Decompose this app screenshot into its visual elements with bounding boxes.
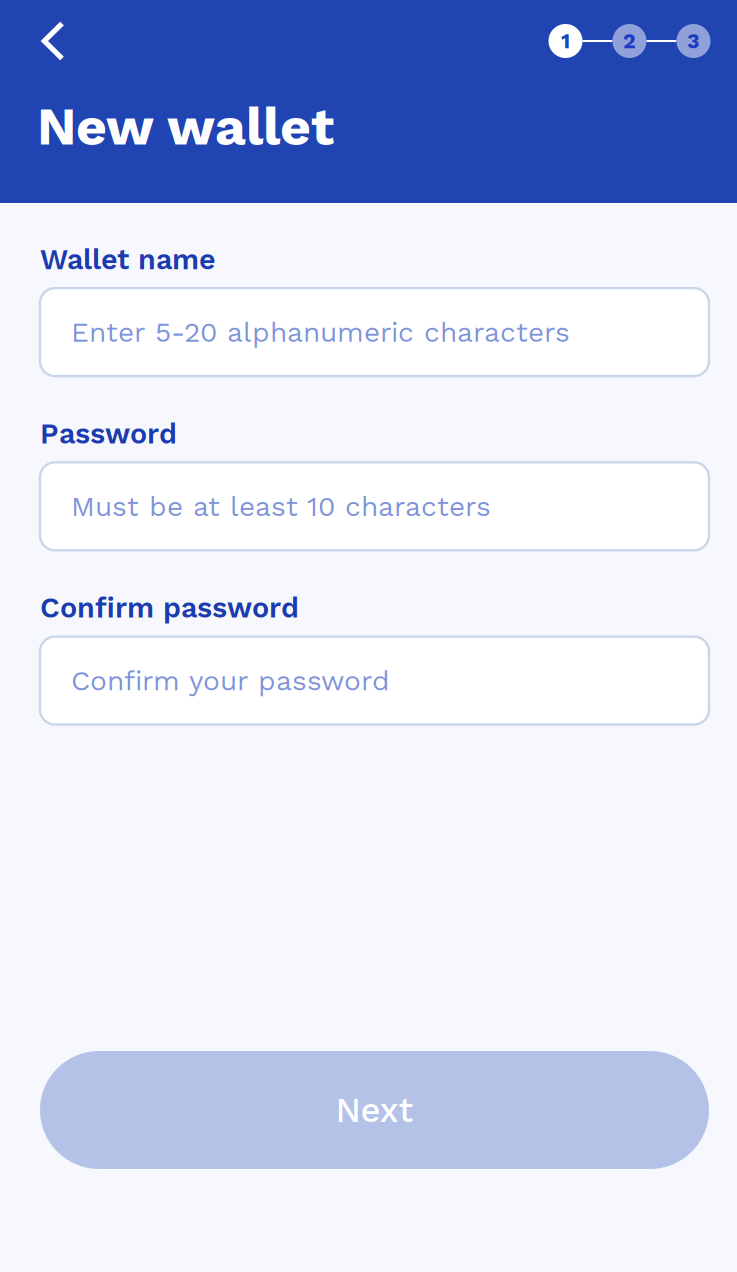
button[interactable]: Must be at least 10 characters [40, 462, 709, 550]
staticText: Wallet name [40, 242, 216, 276]
staticText: 1 [561, 28, 570, 53]
staticText: Confirm password [40, 591, 299, 625]
staticText: New wallet [37, 95, 334, 158]
button[interactable]: Confirm your password [40, 637, 709, 725]
staticText: Must be at least 10 characters [71, 490, 491, 523]
staticText: 2 [623, 28, 636, 53]
staticText: Confirm your password [71, 664, 390, 697]
staticText: Next [335, 1090, 413, 1130]
button[interactable]: Enter 5-20 alphanumeric characters [40, 288, 709, 376]
button[interactable]: Back [31, 19, 75, 63]
staticText: 3 [687, 28, 700, 53]
staticText: Password [40, 417, 177, 450]
staticText: Enter 5-20 alphanumeric characters [71, 316, 570, 348]
button[interactable]: Next [40, 1051, 709, 1169]
